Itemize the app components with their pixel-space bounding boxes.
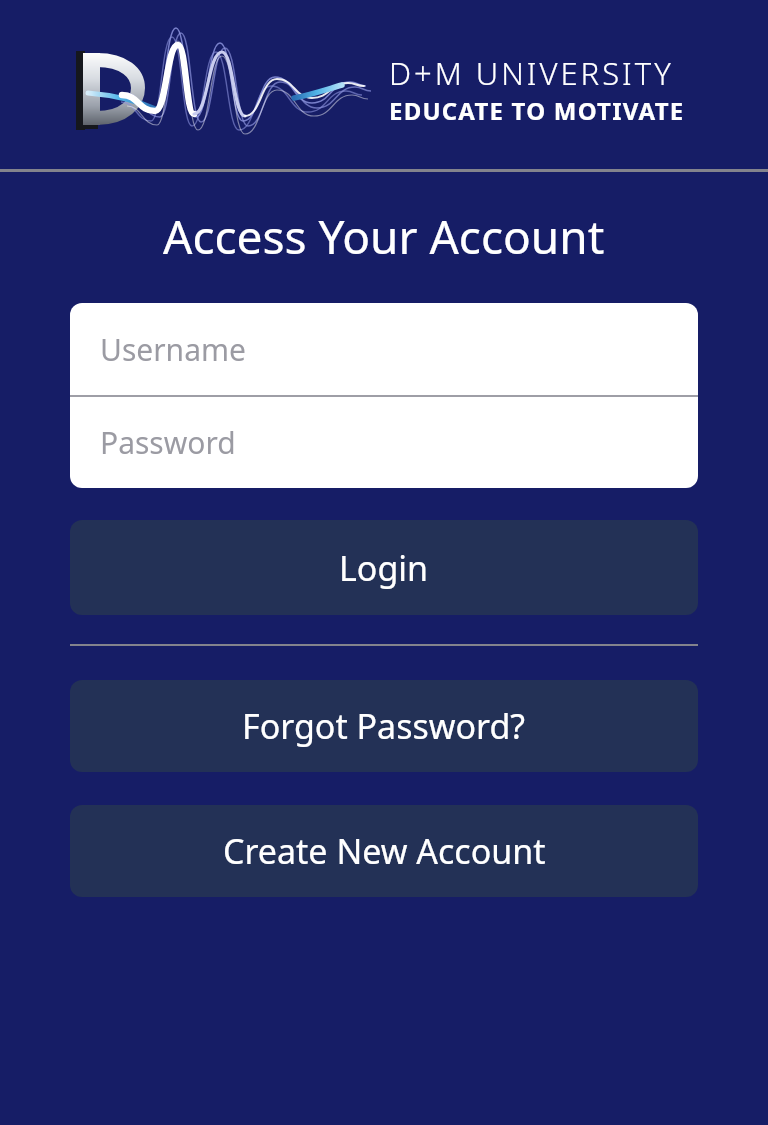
staticText: Login bbox=[339, 545, 429, 591]
staticText: Password bbox=[100, 422, 236, 463]
staticText: Access Your Account bbox=[163, 205, 605, 268]
button[interactable]: Create New Account bbox=[70, 805, 698, 897]
staticText: Forgot Password? bbox=[242, 703, 526, 749]
staticText: D+M UNIVERSITY bbox=[389, 52, 674, 94]
staticText: Create New Account bbox=[223, 828, 546, 874]
button[interactable]: Password bbox=[70, 397, 698, 488]
staticText: EDUCATE TO MOTIVATE bbox=[389, 94, 685, 127]
button[interactable]: Username bbox=[70, 303, 698, 395]
button[interactable]: Login bbox=[70, 520, 698, 615]
staticText: Username bbox=[100, 329, 246, 370]
button[interactable]: Forgot Password? bbox=[70, 680, 698, 772]
